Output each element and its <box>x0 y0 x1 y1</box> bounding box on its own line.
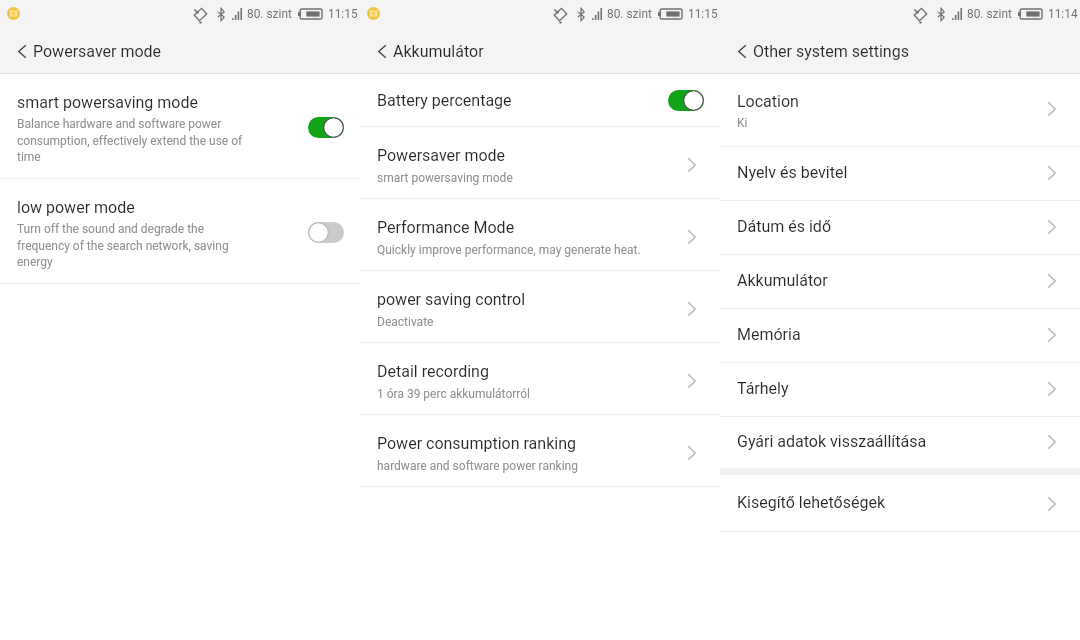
button[interactable]: Nyelv és bevitel <box>720 147 1080 200</box>
button[interactable]: Performance Mode <box>360 199 720 270</box>
staticText: Deactivate <box>377 315 434 329</box>
button[interactable]: Dátum és idő <box>720 201 1080 254</box>
staticText: Gyári adatok visszaállítása <box>737 432 927 451</box>
staticText: Power consumption ranking <box>377 434 576 453</box>
staticText: Powersaver mode <box>377 146 506 165</box>
staticText: Performance Mode <box>377 218 515 237</box>
staticText: Location <box>737 92 799 111</box>
staticText: low power mode <box>17 198 135 217</box>
button[interactable]: Switch on <box>668 90 704 111</box>
staticText: Dátum és idő <box>737 217 832 236</box>
staticText: Powersaver mode <box>33 42 162 61</box>
button[interactable]: Detail recording <box>360 343 720 414</box>
staticText: Ki <box>737 116 748 130</box>
staticText: 11:15 <box>328 7 358 21</box>
staticText: Tárhely <box>737 379 789 398</box>
staticText: 80. szint <box>607 7 652 21</box>
button[interactable]: Memória <box>720 309 1080 362</box>
button[interactable]: power saving control <box>360 271 720 342</box>
button[interactable]: Tárhely <box>720 363 1080 416</box>
staticText: smart powersaving mode <box>17 93 198 112</box>
button[interactable]: Switch on <box>308 117 344 138</box>
button[interactable]: smart powersaving mode <box>0 74 360 178</box>
button[interactable]: Back <box>729 31 755 71</box>
staticText: hardware and software power ranking <box>377 459 578 473</box>
staticText: 1 óra 39 perc akkumulátorról <box>377 387 530 401</box>
staticText: 11:15 <box>688 7 718 21</box>
button[interactable]: Switch off <box>308 222 344 243</box>
staticText: Turn off the sound and degrade the frequ… <box>17 222 229 269</box>
button[interactable]: Gyári adatok visszaállítása <box>720 417 1080 468</box>
staticText: Quickly improve performance, may generat… <box>377 243 641 257</box>
button[interactable]: Back <box>369 31 395 71</box>
staticText: Detail recording <box>377 362 489 381</box>
staticText: 80. szint <box>967 7 1012 21</box>
staticText: Battery percentage <box>377 91 512 110</box>
staticText: 80. szint <box>247 7 292 21</box>
button[interactable]: Power consumption ranking <box>360 415 720 486</box>
button[interactable]: Back <box>9 31 35 71</box>
staticText: power saving control <box>377 290 526 309</box>
staticText: Akkumulátor <box>393 42 484 61</box>
staticText: 11:14 <box>1048 7 1078 21</box>
button[interactable]: Akkumulátor <box>720 255 1080 308</box>
staticText: Akkumulátor <box>737 271 828 290</box>
staticText: Other system settings <box>753 42 909 61</box>
button[interactable]: Kisegítő lehetőségek <box>720 475 1080 531</box>
staticText: Kisegítő lehetőségek <box>737 493 885 512</box>
button[interactable]: Powersaver mode <box>360 127 720 198</box>
button[interactable]: Location <box>720 74 1080 146</box>
button[interactable]: Battery percentage <box>360 74 720 126</box>
staticText: Nyelv és bevitel <box>737 163 848 182</box>
button[interactable]: low power mode <box>0 179 360 283</box>
staticText: Memória <box>737 325 801 344</box>
staticText: Balance hardware and software power cons… <box>17 117 243 164</box>
staticText: smart powersaving mode <box>377 171 513 185</box>
